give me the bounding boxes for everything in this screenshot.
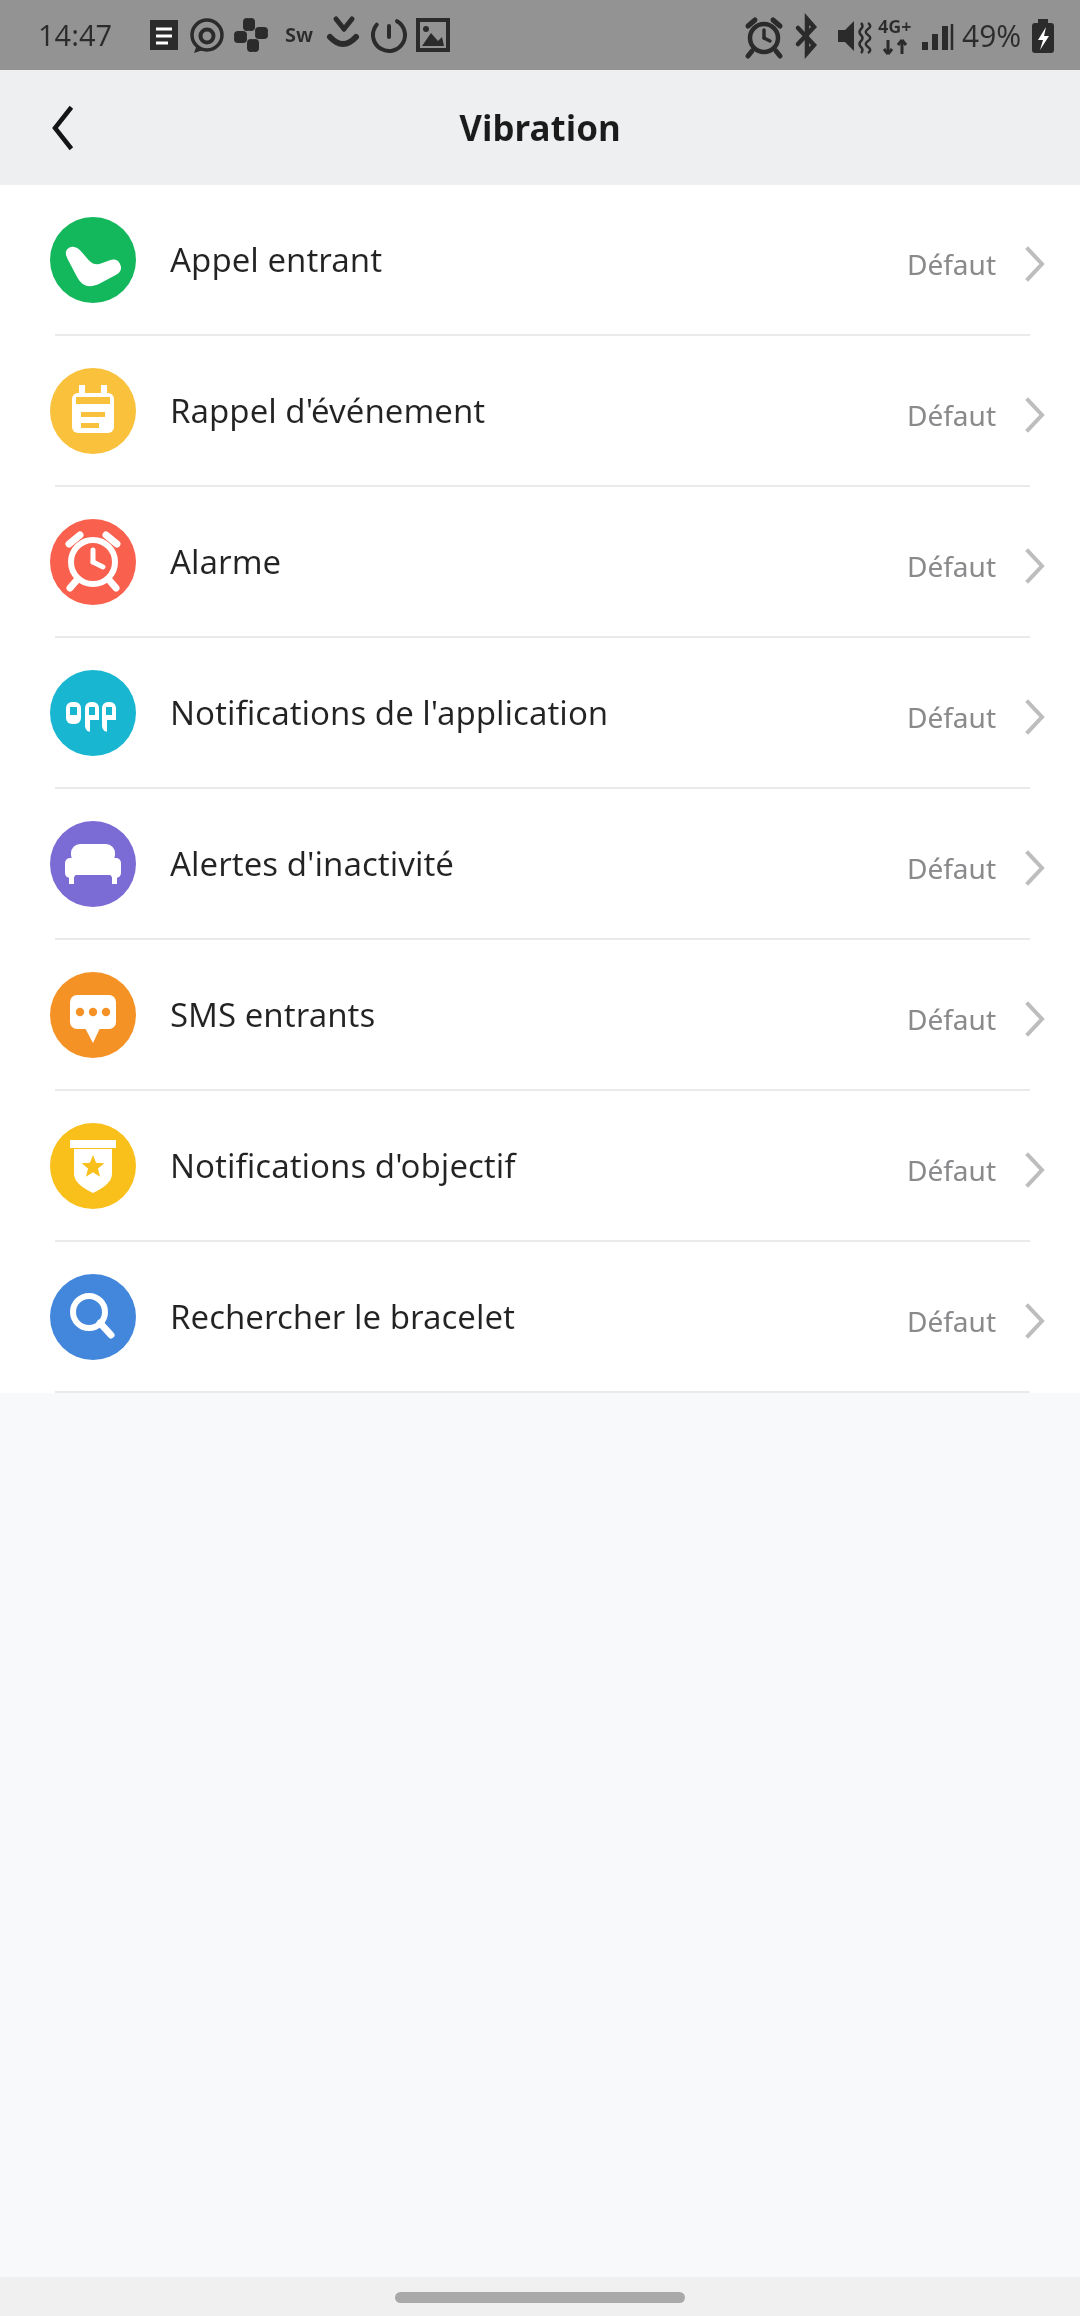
staticText: Défaut [907,1000,996,1038]
staticText: Défaut [907,396,996,434]
staticText: Rechercher le bracelet [170,1294,515,1339]
staticText: Notifications de l'application [170,690,609,735]
staticText: Notifications d'objectif [170,1143,516,1188]
staticText: SMS entrants [170,992,376,1037]
button[interactable]: Rappel d'événement [0,336,1080,485]
staticText: Alarme [170,539,282,584]
button[interactable]: Home [395,2292,685,2303]
button[interactable]: Alarme [0,487,1080,636]
staticText: Défaut [907,1302,996,1340]
staticText: 14:47 [38,15,113,54]
button[interactable]: Back [18,85,104,171]
staticText: Défaut [907,698,996,736]
staticText: Défaut [907,1151,996,1189]
staticText: Rappel d'événement [170,388,486,433]
staticText: Appel entrant [170,237,383,282]
staticText: 49% [962,15,1022,56]
staticText: Vibration [459,104,621,152]
staticText: Défaut [907,547,996,585]
staticText: Défaut [907,245,996,283]
staticText: Alertes d'inactivité [170,841,454,886]
button[interactable]: Appel entrant [0,185,1080,334]
staticText: Sw [285,21,314,48]
button[interactable]: Notifications d'objectif [0,1091,1080,1240]
button[interactable]: SMS entrants [0,940,1080,1089]
button[interactable]: Notifications de l'application [0,638,1080,787]
staticText: Défaut [907,849,996,887]
button[interactable]: Rechercher le bracelet [0,1242,1080,1391]
button[interactable]: Alertes d'inactivité [0,789,1080,938]
staticText: 4G+ [878,14,912,39]
